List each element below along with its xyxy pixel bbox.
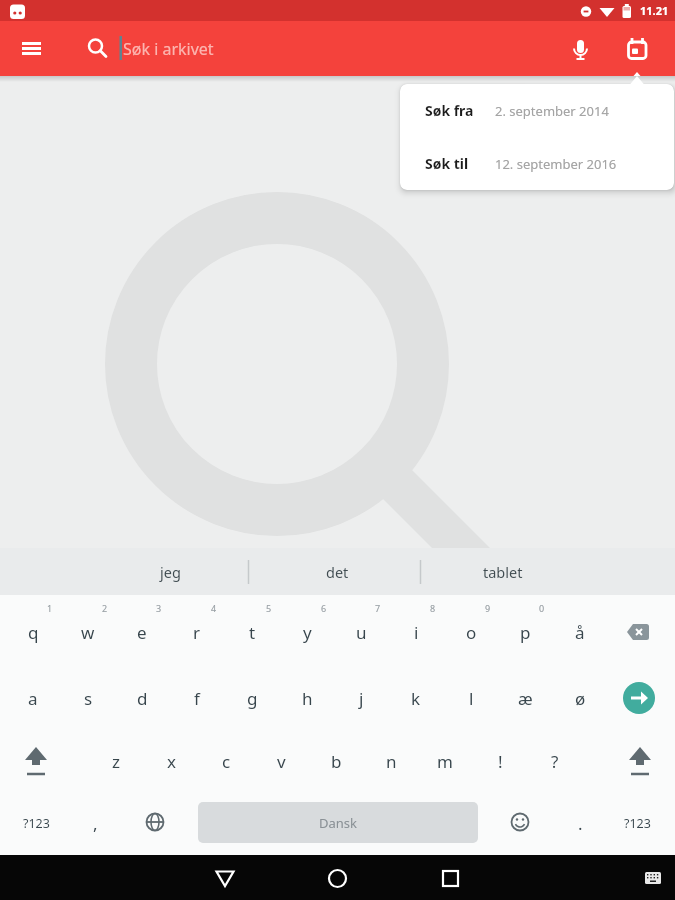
button[interactable]: Søk i arkivet — [123, 21, 423, 76]
staticText: ?123 — [23, 815, 50, 832]
staticText: w — [81, 621, 95, 644]
staticText: 6 — [321, 602, 327, 614]
button[interactable]: a — [7, 668, 59, 728]
button[interactable] — [566, 26, 596, 56]
button[interactable]: Dansk — [198, 802, 478, 843]
staticText: z — [112, 750, 120, 773]
button[interactable]: å — [554, 602, 606, 662]
staticText: . — [578, 812, 583, 835]
button[interactable]: u — [335, 602, 387, 662]
button[interactable]: h — [281, 668, 333, 728]
button[interactable]: ?123 — [607, 793, 667, 853]
staticText: e — [137, 621, 147, 644]
staticText: g — [247, 687, 258, 710]
button[interactable]: m — [419, 731, 471, 791]
button[interactable] — [14, 38, 48, 66]
staticText: 8 — [430, 602, 436, 614]
button[interactable]: b — [310, 731, 362, 791]
staticText: Søk til — [425, 154, 469, 173]
button[interactable]: , — [72, 793, 118, 853]
button[interactable] — [497, 799, 543, 845]
staticText: det — [326, 562, 349, 582]
button[interactable] — [611, 602, 667, 662]
staticText: b — [331, 750, 342, 773]
staticText: f — [194, 687, 200, 710]
button[interactable]: . — [557, 793, 603, 853]
staticText: 4 — [211, 602, 217, 614]
staticText: Søk i arkivet — [123, 38, 214, 60]
staticText: Dansk — [319, 814, 357, 832]
button[interactable]: t — [226, 602, 278, 662]
staticText: 2 — [102, 602, 108, 614]
button[interactable] — [8, 734, 64, 790]
button[interactable] — [622, 32, 654, 62]
staticText: q — [28, 621, 39, 644]
staticText: ? — [551, 750, 559, 773]
staticText: v — [277, 750, 286, 773]
button[interactable]: v — [255, 731, 307, 791]
staticText: a — [28, 687, 38, 710]
staticText: 11.21 — [640, 3, 669, 18]
button[interactable]: o — [445, 602, 497, 662]
button[interactable]: j — [335, 668, 387, 728]
button[interactable]: d — [116, 668, 168, 728]
button[interactable]: x — [145, 731, 197, 791]
staticText: l — [469, 687, 474, 710]
button[interactable]: s — [62, 668, 114, 728]
staticText: 1 — [47, 602, 53, 614]
button[interactable]: i — [390, 602, 442, 662]
button[interactable]: ? — [529, 731, 581, 791]
staticText: m — [437, 750, 453, 773]
button[interactable]: l — [445, 668, 497, 728]
staticText: 5 — [266, 602, 272, 614]
button[interactable] — [638, 863, 668, 893]
staticText: , — [93, 812, 98, 835]
staticText: t — [249, 621, 256, 644]
staticText: 2. september 2014 — [495, 102, 609, 120]
button[interactable] — [623, 682, 655, 714]
staticText: i — [414, 621, 419, 644]
staticText: c — [222, 750, 231, 773]
staticText: 12. september 2016 — [495, 155, 617, 173]
button[interactable]: f — [171, 668, 223, 728]
button[interactable]: q — [7, 602, 59, 662]
button[interactable]: æ — [499, 668, 551, 728]
button[interactable]: ø — [554, 668, 606, 728]
staticText: 0 — [539, 602, 545, 614]
staticText: 7 — [375, 602, 381, 614]
button[interactable]: ! — [474, 731, 526, 791]
button[interactable]: Søk til — [400, 137, 674, 190]
staticText: s — [84, 687, 93, 710]
button[interactable]: k — [390, 668, 442, 728]
button[interactable]: c — [200, 731, 252, 791]
button[interactable]: z — [90, 731, 142, 791]
staticText: o — [466, 621, 477, 644]
button[interactable]: n — [365, 731, 417, 791]
staticText: h — [302, 687, 313, 710]
button[interactable] — [314, 855, 360, 900]
button[interactable]: Søk fra — [400, 84, 674, 137]
button[interactable]: det — [262, 549, 412, 595]
button[interactable]: p — [499, 602, 551, 662]
staticText: ! — [498, 750, 503, 773]
button[interactable] — [427, 855, 473, 900]
button[interactable]: tablet — [428, 549, 578, 595]
button[interactable]: jeg — [95, 549, 245, 595]
button[interactable]: r — [171, 602, 223, 662]
staticText: j — [359, 687, 364, 710]
staticText: ø — [575, 687, 586, 710]
button[interactable] — [201, 855, 247, 900]
staticText: u — [356, 621, 367, 644]
button[interactable]: e — [116, 602, 168, 662]
button[interactable]: g — [226, 668, 278, 728]
staticText: n — [386, 750, 397, 773]
staticText: jeg — [160, 562, 181, 582]
staticText: 9 — [485, 602, 491, 614]
staticText: r — [193, 621, 201, 644]
button[interactable]: w — [62, 602, 114, 662]
button[interactable] — [82, 33, 112, 63]
button[interactable]: ?123 — [6, 793, 66, 853]
button[interactable] — [132, 799, 178, 845]
button[interactable] — [612, 734, 668, 790]
button[interactable]: y — [281, 602, 333, 662]
